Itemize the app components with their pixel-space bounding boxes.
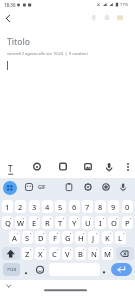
button[interactable]: T: [55, 216, 66, 229]
staticText: 8: [98, 202, 103, 212]
staticText: GIF: [38, 184, 46, 190]
button[interactable]: [83, 162, 93, 172]
button[interactable]: Titolo: [7, 36, 31, 48]
staticText: 77%: [120, 2, 129, 8]
button[interactable]: O: [108, 216, 119, 229]
staticText: F: [53, 233, 57, 243]
button[interactable]: Q: [2, 216, 13, 229]
button[interactable]: Z: [22, 247, 33, 260]
staticText: 18:36: [4, 2, 16, 8]
staticText: 2: [18, 202, 23, 212]
staticText: U: [85, 218, 91, 228]
button[interactable]: L: [115, 231, 126, 244]
button[interactable]: K: [102, 231, 113, 244]
staticText: J: [92, 233, 95, 243]
button[interactable]: X: [35, 247, 46, 260]
button[interactable]: [2, 247, 20, 260]
button[interactable]: [21, 263, 32, 276]
staticText: T: [8, 163, 13, 174]
button[interactable]: [24, 182, 34, 192]
button[interactable]: 9: [108, 200, 119, 213]
staticText: I: [99, 218, 102, 228]
staticText: T: [58, 218, 63, 228]
staticText: K: [105, 233, 110, 243]
button[interactable]: C: [49, 247, 60, 260]
button[interactable]: [101, 182, 111, 192]
staticText: 6: [72, 202, 77, 212]
staticText: Titolo: [7, 36, 31, 48]
staticText: 0: [125, 202, 130, 212]
staticText: W: [17, 218, 25, 228]
staticText: Y: [72, 218, 77, 228]
staticText: 1: [5, 202, 10, 212]
button[interactable]: [3, 181, 17, 195]
button[interactable]: S: [22, 231, 33, 244]
button[interactable]: [2, 12, 14, 24]
button[interactable]: 3: [29, 200, 40, 213]
staticText: V: [65, 249, 70, 259]
staticText: venerdì 2 agosto alle ore 10:24 | 0 cara…: [7, 51, 88, 56]
button[interactable]: [115, 13, 125, 23]
staticText: B: [78, 249, 83, 259]
button[interactable]: R: [42, 216, 53, 229]
button[interactable]: [104, 162, 114, 172]
button[interactable]: 1: [2, 200, 13, 213]
staticText: C: [52, 249, 57, 259]
button[interactable]: 6: [69, 200, 80, 213]
button[interactable]: ?123: [3, 263, 20, 276]
staticText: 3: [32, 202, 37, 212]
button[interactable]: P: [122, 216, 133, 229]
button[interactable]: [83, 182, 93, 192]
staticText: E: [32, 218, 37, 228]
button[interactable]: F: [49, 231, 60, 244]
staticText: M: [104, 249, 111, 259]
button[interactable]: [32, 162, 42, 172]
button[interactable]: A: [9, 231, 20, 244]
button[interactable]: 0: [122, 200, 133, 213]
button[interactable]: 5: [55, 200, 66, 213]
button[interactable]: [58, 162, 68, 172]
button[interactable]: M: [102, 247, 113, 260]
button[interactable]: [111, 263, 132, 276]
staticText: ?123: [7, 267, 17, 273]
button[interactable]: E: [29, 216, 40, 229]
button[interactable]: Y: [69, 216, 80, 229]
staticText: 9: [111, 202, 116, 212]
button[interactable]: D: [35, 231, 46, 244]
staticText: Z: [25, 249, 30, 259]
button[interactable]: [64, 182, 74, 192]
staticText: D: [38, 233, 44, 243]
staticText: S: [25, 233, 30, 243]
button[interactable]: 2: [15, 200, 26, 213]
staticText: O: [111, 218, 117, 228]
button[interactable]: U: [82, 216, 93, 229]
button[interactable]: [101, 263, 110, 276]
button[interactable]: [89, 13, 99, 23]
staticText: N: [91, 249, 97, 259]
button[interactable]: [102, 13, 112, 23]
button[interactable]: T: [5, 162, 16, 176]
staticText: 5: [58, 202, 63, 212]
button[interactable]: N: [88, 247, 99, 260]
button[interactable]: I: [95, 216, 106, 229]
button[interactable]: 4: [42, 200, 53, 213]
button[interactable]: [116, 247, 134, 260]
staticText: G: [65, 233, 71, 243]
button[interactable]: [123, 162, 133, 172]
button[interactable]: [118, 182, 128, 192]
staticText: 4: [45, 202, 50, 212]
button[interactable]: H: [75, 231, 86, 244]
button[interactable]: V: [62, 247, 73, 260]
button[interactable]: G: [62, 231, 73, 244]
button[interactable]: W: [15, 216, 26, 229]
button[interactable]: B: [75, 247, 86, 260]
staticText: R: [45, 218, 50, 228]
button[interactable]: [34, 263, 46, 276]
button[interactable]: GIF: [38, 183, 50, 192]
button[interactable]: J: [88, 231, 99, 244]
staticText: L: [118, 233, 123, 243]
button[interactable]: 7: [82, 200, 93, 213]
button[interactable]: 8: [95, 200, 106, 213]
staticText: 7: [85, 202, 90, 212]
